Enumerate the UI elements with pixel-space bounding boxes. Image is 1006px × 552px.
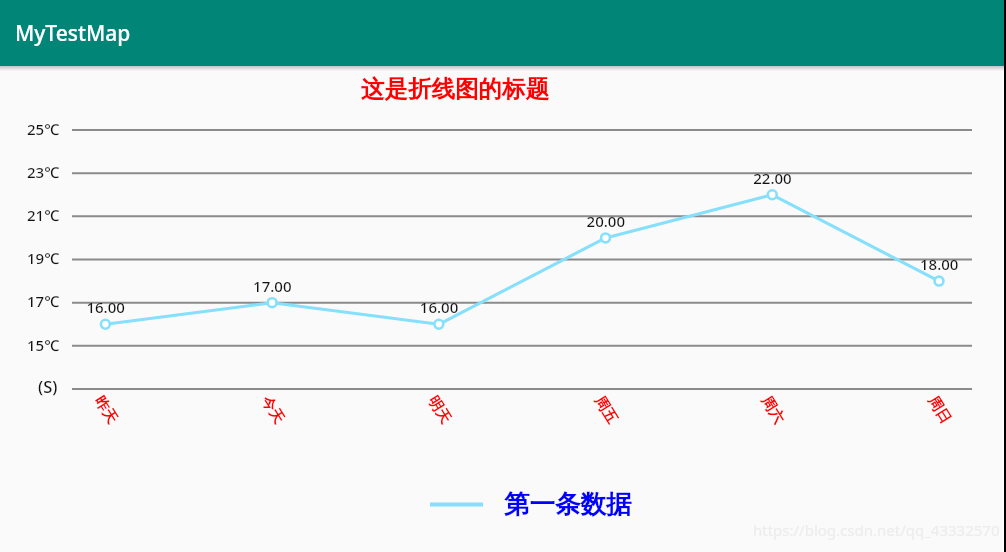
staticText: https://blog.csdn.net/qq_43332570 — [753, 520, 1000, 540]
staticText: 这是折线图的标题 — [361, 74, 549, 104]
button[interactable]: MyTestMap — [0, 0, 1006, 66]
other: Line chart of daily temperature — [0, 0, 1006, 552]
staticText: MyTestMap — [15, 19, 131, 48]
button[interactable]: 第一条数据 — [504, 488, 632, 520]
